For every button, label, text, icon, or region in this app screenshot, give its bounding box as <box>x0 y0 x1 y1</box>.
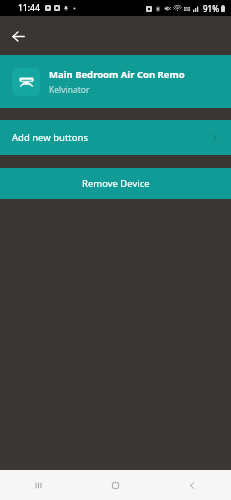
button[interactable]: Add new buttons <box>0 120 231 155</box>
button[interactable]: Back <box>154 470 231 500</box>
staticText: Kelvinator <box>49 84 90 96</box>
button[interactable]: Main Bedroom Air Con Remo <box>0 55 231 108</box>
staticText: Main Bedroom Air Con Remo <box>49 68 185 81</box>
button[interactable]: Recents <box>0 470 77 500</box>
button[interactable]: Remove Device <box>0 168 231 199</box>
staticText: Add new buttons <box>12 131 88 144</box>
staticText: 91% <box>203 3 219 14</box>
staticText: 11:44 <box>18 2 40 14</box>
button[interactable]: Home <box>77 470 154 500</box>
button[interactable]: Back <box>4 22 32 50</box>
staticText: Remove Device <box>82 177 150 190</box>
